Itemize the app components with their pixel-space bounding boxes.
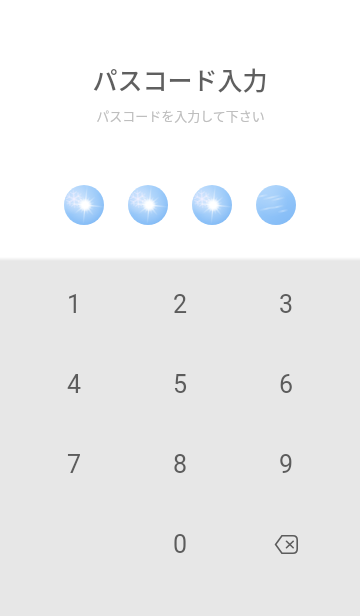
staticText: パスコードを入力して下さい: [96, 106, 265, 125]
button[interactable]: 7: [21, 424, 127, 504]
button[interactable]: 4: [21, 344, 127, 424]
staticText: パスコード入力: [92, 61, 268, 97]
staticText: 3: [279, 290, 294, 319]
staticText: 6: [279, 370, 294, 399]
other: Delete: [262, 520, 310, 568]
button[interactable]: 1: [21, 264, 127, 344]
staticText: 0: [173, 530, 188, 559]
staticText: 5: [173, 370, 188, 399]
staticText: 1: [67, 290, 82, 319]
button[interactable]: 2: [127, 264, 233, 344]
button[interactable]: 9: [233, 424, 339, 504]
button[interactable]: Delete: [233, 504, 339, 584]
button[interactable]: 3: [233, 264, 339, 344]
staticText: 4: [67, 370, 82, 399]
staticText: 9: [279, 450, 294, 479]
staticText: 2: [173, 290, 188, 319]
staticText: 7: [67, 450, 82, 479]
button[interactable]: 6: [233, 344, 339, 424]
staticText: 8: [173, 450, 188, 479]
button[interactable]: 5: [127, 344, 233, 424]
button[interactable]: 8: [127, 424, 233, 504]
button[interactable]: 0: [127, 504, 233, 584]
